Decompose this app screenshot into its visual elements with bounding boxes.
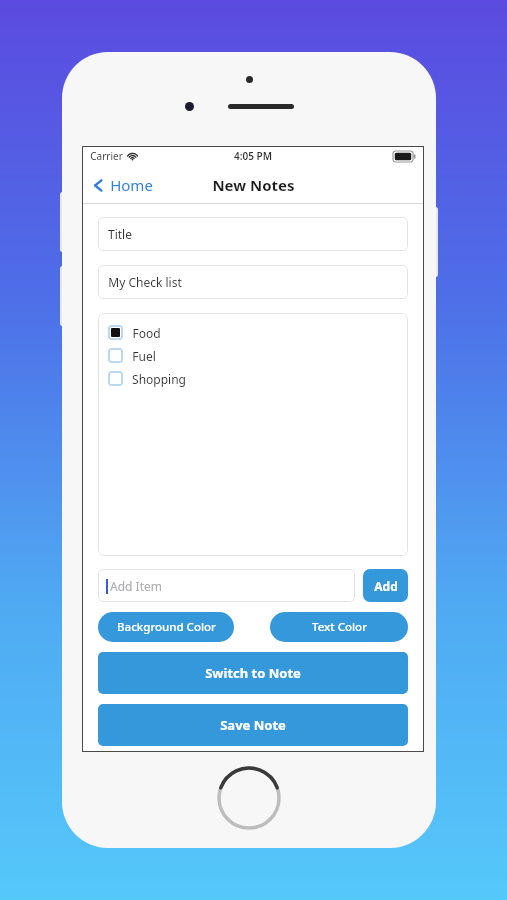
staticText: Fuel xyxy=(132,348,156,364)
button[interactable]: Food xyxy=(108,321,408,344)
staticText: My Check list xyxy=(108,274,182,290)
staticText: New Notes xyxy=(212,175,295,195)
staticText: Carrier xyxy=(90,149,123,163)
button[interactable]: Switch to Note xyxy=(98,652,408,694)
button[interactable]: Fuel xyxy=(108,344,408,367)
staticText: Shopping xyxy=(132,371,186,387)
staticText: Add xyxy=(374,578,398,594)
staticText: Home xyxy=(110,175,153,195)
staticText: Add Item xyxy=(110,578,162,594)
button[interactable]: Text Color xyxy=(270,612,408,642)
staticText: Switch to Note xyxy=(205,664,301,682)
button[interactable]: Shopping xyxy=(108,367,408,390)
staticText: Text Color xyxy=(312,619,367,635)
staticText: Title xyxy=(108,226,132,242)
button[interactable]: Background Color xyxy=(98,612,234,642)
button[interactable]: Add Item xyxy=(98,569,355,602)
button[interactable]: Title xyxy=(98,217,408,251)
staticText: 4:05 PM xyxy=(234,149,272,163)
staticText: Save Note xyxy=(220,716,286,734)
staticText: Food xyxy=(132,325,161,341)
button[interactable]: Home xyxy=(88,171,157,199)
staticText: Background Color xyxy=(117,619,216,635)
button[interactable]: Add xyxy=(363,569,408,602)
button[interactable]: My Check list xyxy=(98,265,408,299)
button[interactable]: Save Note xyxy=(98,704,408,746)
